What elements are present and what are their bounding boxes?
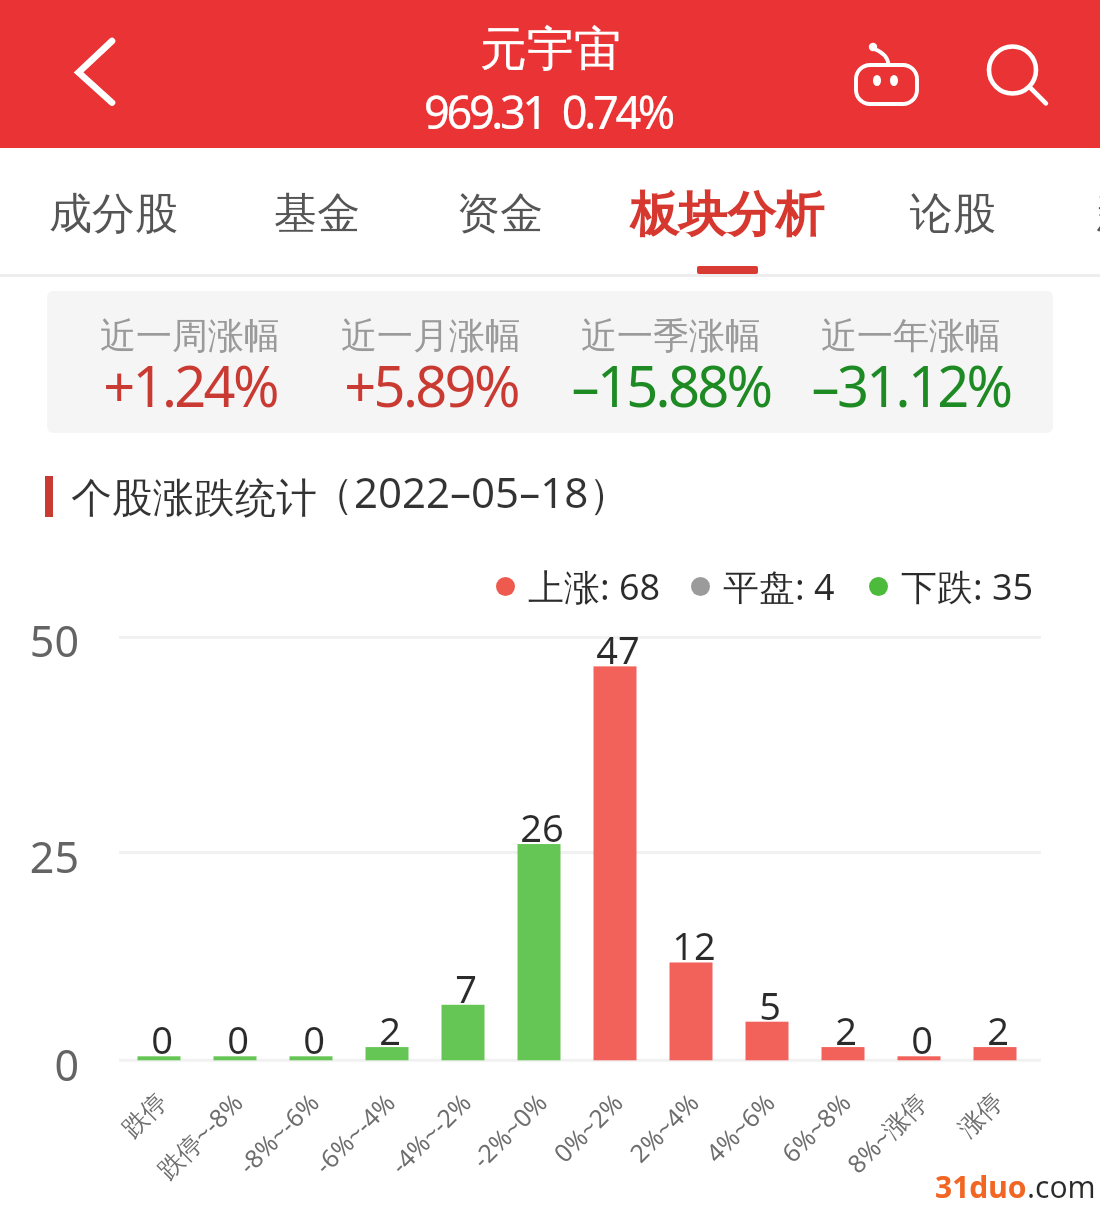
staticText: 跌停~-8% (149, 1085, 250, 1185)
staticText: +1.24% (50, 347, 330, 423)
staticText: 31duo (935, 1166, 1027, 1207)
staticText: 新 (1096, 187, 1100, 241)
staticText: 近一年涨幅 (771, 313, 1051, 358)
staticText: 论股 (910, 187, 996, 241)
staticText: 板块分析 (630, 184, 824, 245)
staticText: –15.88% (531, 347, 811, 423)
staticText: -6%~-4% (306, 1085, 402, 1181)
staticText: 上涨: 68 (528, 562, 661, 611)
staticText: 7 (416, 962, 516, 1014)
staticText: 0 (264, 1013, 364, 1065)
staticText: 涨停 (952, 1086, 1009, 1144)
button[interactable]: 论股 (878, 152, 1028, 276)
staticText: -8%~-6% (230, 1085, 326, 1181)
staticText: –31.12% (771, 347, 1051, 423)
staticText: 0%~2% (546, 1085, 630, 1169)
button[interactable]: 资金 (425, 152, 575, 276)
staticText: 元宇宙 (480, 20, 621, 79)
staticText: 5 (720, 979, 820, 1031)
staticText: 969.31 0.74% (424, 81, 672, 142)
button[interactable]: 平盘: 4 (691, 562, 835, 611)
staticText: 0 (872, 1013, 972, 1065)
button[interactable] (47, 291, 1053, 433)
button[interactable]: Back (55, 32, 135, 112)
staticText: 近一周涨幅 (50, 313, 330, 358)
staticText: 0 (188, 1013, 288, 1065)
staticText: 2 (948, 1004, 1048, 1056)
staticText: 12 (644, 919, 744, 971)
staticText: 2 (796, 1004, 896, 1056)
staticText: 下跌: 35 (901, 562, 1034, 611)
staticText: 50 (0, 611, 79, 663)
staticText: 近一月涨幅 (291, 313, 571, 358)
staticText: .com (1027, 1166, 1096, 1207)
staticText: （2022–05–18） (312, 463, 631, 520)
staticText: +5.89% (291, 347, 571, 423)
staticText: 47 (568, 623, 668, 675)
button[interactable]: 成分股 (38, 152, 188, 276)
staticText: 个股涨跌统计 (71, 473, 317, 525)
staticText: 8%~涨停 (839, 1085, 934, 1180)
staticText: -2%~0% (464, 1085, 554, 1175)
staticText: 成分股 (49, 187, 178, 241)
button[interactable]: 基金 (242, 152, 392, 276)
button[interactable]: 新 (1042, 152, 1100, 276)
staticText: 6%~8% (774, 1085, 858, 1169)
staticText: 2%~4% (622, 1085, 706, 1169)
staticText: 跌停 (116, 1086, 173, 1144)
staticText: 资金 (457, 187, 543, 241)
staticText: 4%~6% (698, 1085, 782, 1169)
staticText: -4%~-2% (382, 1085, 478, 1181)
staticText: 2 (340, 1004, 440, 1056)
staticText: 26 (492, 801, 592, 853)
staticText: 近一季涨幅 (531, 313, 811, 358)
button[interactable]: 上涨: 68 (496, 562, 661, 611)
button[interactable]: Search (972, 30, 1054, 112)
staticText: 平盘: 4 (723, 562, 835, 611)
button[interactable]: 下跌: 35 (869, 562, 1034, 611)
staticText: 0 (0, 1035, 79, 1087)
button[interactable]: 板块分析 (612, 152, 842, 276)
staticText: 0 (112, 1013, 212, 1065)
button[interactable]: AI assistant (846, 30, 928, 112)
staticText: 基金 (274, 187, 360, 241)
staticText: 25 (0, 827, 79, 879)
